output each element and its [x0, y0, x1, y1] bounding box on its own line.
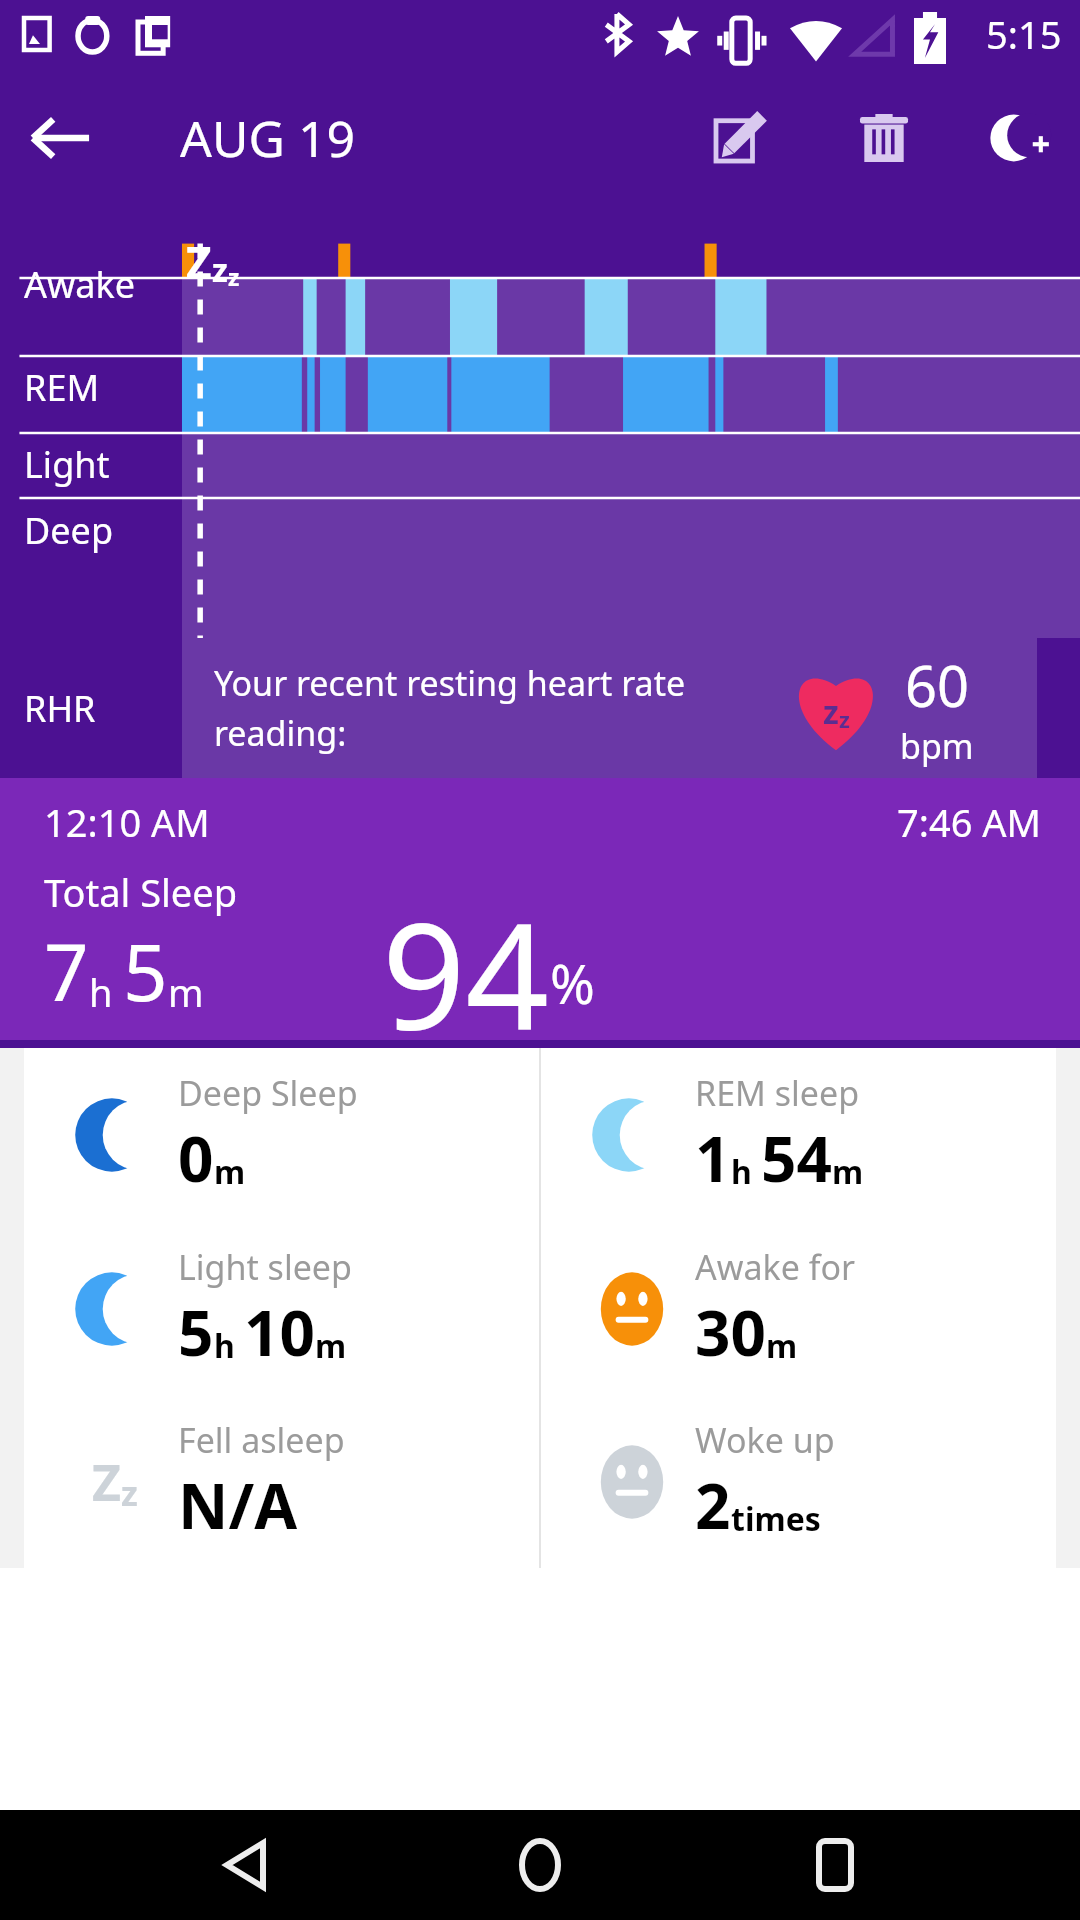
- staticText: 0: [178, 1116, 214, 1200]
- staticText: %: [550, 946, 595, 1020]
- staticText: 7: [44, 918, 89, 1024]
- button[interactable]: Back: [195, 1815, 295, 1915]
- staticText: m: [168, 966, 204, 1018]
- staticText: 5: [178, 1290, 214, 1374]
- staticText: AUG 19: [180, 104, 356, 172]
- staticText: Deep Sleep: [178, 1070, 358, 1116]
- staticText: z: [839, 704, 850, 734]
- button[interactable]: Delete: [838, 92, 930, 184]
- staticText: 7:46 AM: [897, 796, 1042, 848]
- staticText: Z: [92, 1448, 121, 1516]
- button[interactable]: Add sleep: [974, 92, 1066, 184]
- staticText: 10: [244, 1290, 315, 1374]
- button[interactable]: Awake for: [541, 1222, 1056, 1395]
- staticText: z: [212, 248, 228, 292]
- button[interactable]: Edit: [694, 92, 786, 184]
- staticText: N/A: [178, 1463, 298, 1547]
- staticText: Deep: [24, 506, 114, 555]
- staticText: z: [228, 261, 240, 292]
- staticText: bpm: [900, 723, 974, 769]
- staticText: Fell asleep: [178, 1417, 345, 1463]
- staticText: m: [214, 1150, 246, 1194]
- staticText: Awake for: [695, 1244, 856, 1290]
- staticText: z: [823, 690, 839, 734]
- staticText: Woke up: [695, 1417, 835, 1463]
- button[interactable]: Z: [24, 1395, 539, 1568]
- staticText: 60: [905, 647, 970, 723]
- staticText: m: [766, 1324, 798, 1368]
- staticText: m: [315, 1324, 347, 1368]
- staticText: h: [214, 1324, 244, 1368]
- staticText: Awake: [24, 260, 136, 309]
- button[interactable]: REM sleep: [541, 1048, 1056, 1222]
- staticText: Total Sleep: [44, 866, 238, 918]
- staticText: Z: [186, 232, 212, 292]
- staticText: z: [121, 1470, 138, 1516]
- staticText: Light sleep: [178, 1244, 352, 1290]
- button[interactable]: Woke up: [541, 1395, 1056, 1568]
- staticText: h: [89, 966, 123, 1018]
- staticText: 12:10 AM: [44, 796, 210, 848]
- button[interactable]: Back: [22, 99, 100, 177]
- staticText: m: [832, 1150, 864, 1194]
- button[interactable]: Deep Sleep: [24, 1048, 539, 1222]
- staticText: h: [731, 1150, 761, 1194]
- staticText: Your recent resting heart rate reading:: [214, 660, 686, 756]
- staticText: times: [731, 1497, 821, 1541]
- staticText: REM sleep: [695, 1070, 860, 1116]
- staticText: 2: [695, 1463, 731, 1547]
- staticText: 30: [695, 1290, 766, 1374]
- staticText: 5:15: [986, 8, 1062, 60]
- staticText: Light: [24, 440, 110, 489]
- button[interactable]: Light sleep: [24, 1222, 539, 1395]
- staticText: RHR: [24, 684, 96, 733]
- button[interactable]: Recents: [785, 1815, 885, 1915]
- staticText: 1: [695, 1116, 731, 1200]
- button[interactable]: Home: [490, 1815, 590, 1915]
- staticText: 94: [382, 874, 550, 1040]
- staticText: REM: [24, 363, 100, 412]
- staticText: 54: [761, 1116, 832, 1200]
- staticText: 5: [123, 918, 168, 1024]
